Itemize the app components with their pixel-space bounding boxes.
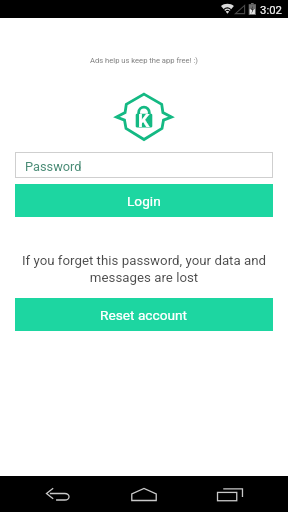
staticText: If you forget this password, your data a… <box>16 253 272 285</box>
staticText: K <box>138 110 150 131</box>
button[interactable]: Login <box>15 184 273 217</box>
staticText: Ads help us keep the app free! :) <box>90 56 198 65</box>
staticText: Password <box>25 159 82 174</box>
button[interactable]: Home <box>120 476 168 512</box>
button[interactable]: Password <box>15 152 273 178</box>
staticText: Reset account <box>100 307 188 323</box>
staticText: 3:02 <box>260 3 282 16</box>
button[interactable]: Back <box>34 476 82 512</box>
button[interactable]: Recent apps <box>206 476 254 512</box>
button[interactable]: Reset account <box>15 298 273 331</box>
staticText: Login <box>127 193 161 209</box>
